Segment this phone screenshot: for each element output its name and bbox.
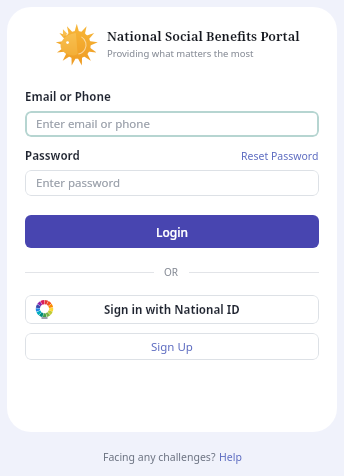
- staticText: Help: [219, 450, 242, 464]
- staticText: Password: [25, 148, 80, 164]
- staticText: OR: [164, 265, 179, 279]
- staticText: National Social Benefits Portal: [107, 28, 300, 45]
- button[interactable]: Help: [219, 450, 242, 464]
- staticText: Email or Phone: [25, 89, 111, 105]
- staticText: Providing what matters the most: [107, 47, 254, 60]
- button[interactable]: Sign in with National ID: [25, 295, 319, 324]
- button[interactable]: Sign Up: [25, 333, 319, 360]
- staticText: Facing any challenges?: [103, 450, 219, 464]
- button[interactable]: Enter password: [25, 170, 319, 196]
- staticText: Enter password: [36, 175, 121, 191]
- button[interactable]: Reset Password: [241, 149, 319, 163]
- staticText: Reset Password: [241, 149, 319, 163]
- button[interactable]: Enter email or phone: [25, 111, 319, 137]
- button[interactable]: Login: [25, 215, 319, 248]
- staticText: Enter email or phone: [36, 116, 150, 132]
- staticText: Login: [156, 224, 188, 240]
- staticText: Sign Up: [151, 339, 193, 355]
- staticText: Sign in with National ID: [104, 302, 240, 318]
